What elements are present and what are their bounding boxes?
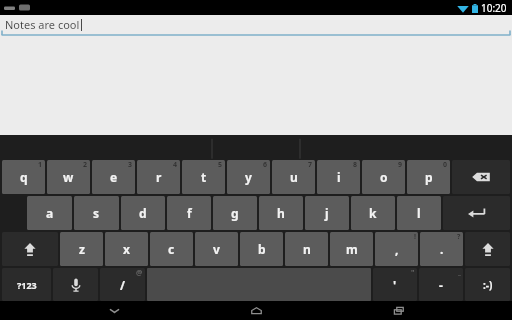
button[interactable]: d: [121, 196, 165, 230]
staticText: 0: [443, 160, 448, 170]
button[interactable]: .: [420, 232, 463, 266]
button[interactable]: e: [92, 160, 135, 194]
staticText: Notes are cool: [5, 17, 80, 32]
staticText: u: [290, 169, 298, 185]
staticText: v: [213, 241, 220, 257]
staticText: a: [46, 205, 54, 221]
staticText: @: [136, 268, 143, 278]
button[interactable]: s: [74, 196, 119, 230]
button[interactable]: y: [227, 160, 270, 194]
button[interactable]: ': [373, 268, 417, 301]
staticText: z: [79, 241, 85, 257]
staticText: b: [258, 241, 266, 257]
staticText: h: [277, 205, 285, 221]
staticText: /: [120, 277, 125, 293]
button[interactable]: g: [213, 196, 257, 230]
staticText: m: [346, 241, 358, 257]
staticText: :-): [483, 278, 493, 292]
button[interactable]: Notes are cool: [0, 15, 512, 37]
staticText: ": [411, 268, 415, 278]
button[interactable]: Shift: [2, 232, 58, 266]
button[interactable]: x: [105, 232, 148, 266]
staticText: j: [325, 205, 329, 221]
staticText: 7: [308, 160, 313, 170]
staticText: n: [303, 241, 311, 257]
button[interactable]: ,: [375, 232, 418, 266]
staticText: p: [425, 169, 433, 185]
staticText: f: [187, 205, 192, 221]
button[interactable]: Voice input: [53, 268, 98, 301]
button[interactable]: m: [330, 232, 373, 266]
staticText: ?: [457, 232, 461, 242]
button[interactable]: f: [167, 196, 211, 230]
button[interactable]: q: [2, 160, 45, 194]
button[interactable]: v: [195, 232, 238, 266]
staticText: 10:20: [481, 1, 507, 15]
staticText: 2: [83, 160, 88, 170]
staticText: o: [380, 169, 388, 185]
button[interactable]: p: [407, 160, 450, 194]
staticText: k: [369, 205, 377, 221]
staticText: 3: [128, 160, 133, 170]
staticText: i: [337, 169, 341, 185]
button[interactable]: Recent apps: [370, 301, 428, 320]
staticText: ?123: [17, 279, 37, 291]
button[interactable]: b: [240, 232, 283, 266]
staticText: c: [168, 241, 175, 257]
staticText: 8: [353, 160, 358, 170]
staticText: g: [231, 205, 239, 221]
button[interactable]: c: [150, 232, 193, 266]
staticText: 4: [173, 160, 178, 170]
button[interactable]: o: [362, 160, 405, 194]
button[interactable]: k: [351, 196, 395, 230]
button[interactable]: z: [60, 232, 103, 266]
button[interactable]: Enter: [443, 196, 510, 230]
staticText: 1: [38, 160, 43, 170]
staticText: r: [156, 169, 162, 185]
staticText: q: [20, 169, 28, 185]
button[interactable]: Hide keyboard: [85, 301, 143, 320]
staticText: !: [414, 232, 416, 242]
button[interactable]: /: [100, 268, 145, 301]
button[interactable]: n: [285, 232, 328, 266]
staticText: x: [123, 241, 130, 257]
staticText: -: [439, 277, 443, 293]
staticText: y: [245, 169, 252, 185]
staticText: l: [417, 205, 421, 221]
button[interactable]: i: [317, 160, 360, 194]
staticText: t: [201, 169, 207, 185]
button[interactable]: Shift: [465, 232, 510, 266]
staticText: .: [440, 241, 444, 257]
staticText: 5: [218, 160, 223, 170]
button[interactable]: h: [259, 196, 303, 230]
staticText: w: [63, 169, 74, 185]
button[interactable]: w: [47, 160, 90, 194]
staticText: ': [393, 277, 397, 293]
button[interactable]: -: [419, 268, 463, 301]
button[interactable]: t: [182, 160, 225, 194]
button[interactable]: j: [305, 196, 349, 230]
staticText: _: [458, 268, 461, 278]
button[interactable]: a: [27, 196, 72, 230]
button[interactable]: r: [137, 160, 180, 194]
button[interactable]: u: [272, 160, 315, 194]
staticText: 9: [398, 160, 403, 170]
staticText: ,: [395, 241, 399, 257]
button[interactable]: :-): [465, 268, 510, 301]
staticText: e: [110, 169, 118, 185]
staticText: d: [139, 205, 147, 221]
button[interactable]: Home: [227, 301, 285, 320]
staticText: 6: [263, 160, 268, 170]
button[interactable]: ?123: [2, 268, 51, 301]
staticText: s: [93, 205, 100, 221]
button[interactable]: Backspace: [452, 160, 510, 194]
button[interactable]: l: [397, 196, 441, 230]
